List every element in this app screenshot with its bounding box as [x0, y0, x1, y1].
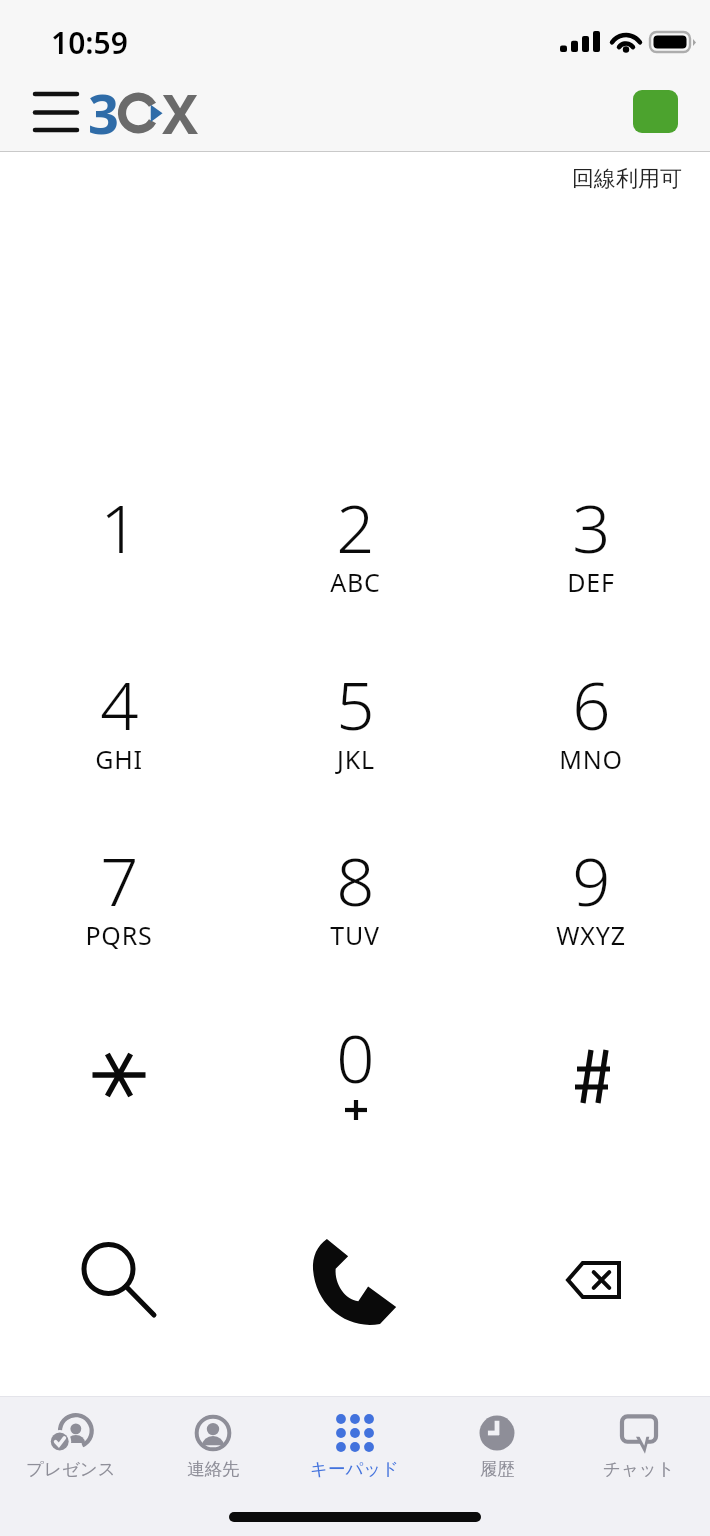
staticText: JKL [337, 742, 375, 776]
staticText: 4 [100, 658, 139, 749]
button[interactable]: 0 [260, 1011, 450, 1151]
staticText: DEF [567, 565, 615, 599]
staticText: WXYZ [556, 918, 626, 952]
button[interactable]: Menu [24, 72, 88, 151]
staticText: 0 [336, 1011, 375, 1102]
staticText: 回線利用可 [572, 165, 682, 193]
staticText: 6 [572, 658, 611, 749]
button[interactable]: 3 [496, 481, 686, 621]
staticText: TUV [330, 918, 380, 952]
button[interactable]: 1 [24, 481, 214, 621]
button[interactable]: Hash [496, 1011, 686, 1151]
button[interactable]: 4 [24, 658, 214, 798]
button[interactable]: Search [24, 1212, 214, 1352]
staticText: キーパッド [310, 1458, 400, 1480]
staticText: ABC [330, 565, 381, 599]
button[interactable]: 履歴 [426, 1397, 568, 1492]
button[interactable]: キーパッド [284, 1397, 426, 1492]
button[interactable]: Call [260, 1212, 450, 1352]
staticText: プレゼンス [26, 1458, 116, 1480]
button[interactable]: プレゼンス [0, 1397, 142, 1492]
staticText: 3 [572, 481, 611, 572]
button[interactable]: Star [24, 1011, 214, 1151]
button[interactable]: 7 [24, 834, 214, 974]
button[interactable]: Delete [496, 1212, 686, 1352]
staticText: 5 [336, 658, 375, 749]
staticText: MNO [559, 742, 623, 776]
staticText: 7 [100, 834, 139, 925]
button[interactable]: 8 [260, 834, 450, 974]
staticText: 8 [336, 834, 375, 925]
button[interactable]: 6 [496, 658, 686, 798]
button[interactable]: 9 [496, 834, 686, 974]
button[interactable]: チャット [568, 1397, 710, 1492]
button[interactable]: Presence status [633, 90, 678, 133]
staticText: 9 [572, 834, 611, 925]
staticText: PQRS [85, 918, 153, 952]
staticText: チャット [603, 1458, 675, 1480]
staticText: X [162, 76, 199, 150]
staticText: 1 [100, 481, 139, 572]
staticText: 2 [336, 481, 375, 572]
button[interactable]: 2 [260, 481, 450, 621]
staticText: 3 [88, 76, 119, 150]
staticText: 連絡先 [187, 1458, 240, 1480]
staticText: 履歴 [480, 1458, 515, 1480]
button[interactable]: 5 [260, 658, 450, 798]
staticText: 10:59 [51, 22, 128, 63]
button[interactable]: 連絡先 [142, 1397, 284, 1492]
staticText: GHI [95, 742, 143, 776]
